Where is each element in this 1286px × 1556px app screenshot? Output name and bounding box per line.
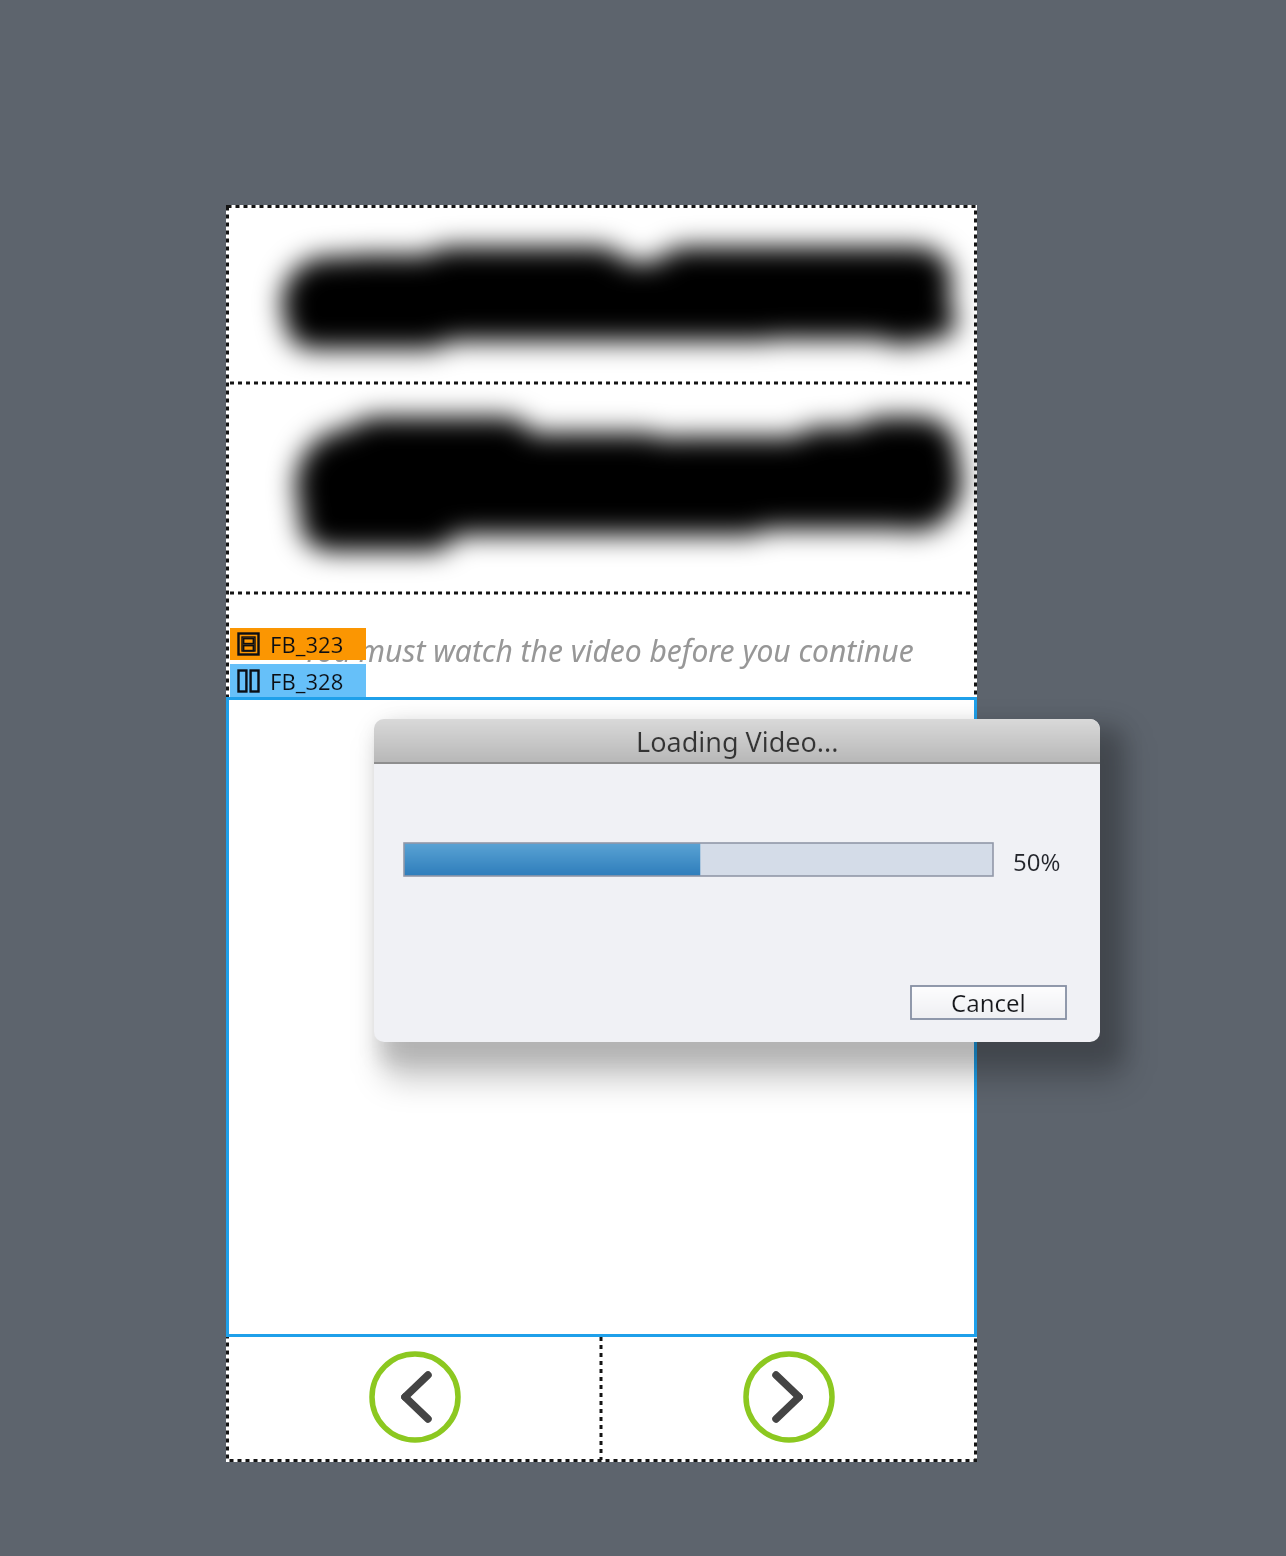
button[interactable]: Previous xyxy=(226,1337,601,1462)
button[interactable]: Headline text xyxy=(226,205,977,395)
button[interactable]: FB_328 xyxy=(230,664,366,697)
button[interactable]: Body text xyxy=(226,385,977,585)
staticText: FB_323 xyxy=(270,629,344,659)
staticText: FB_328 xyxy=(270,666,344,696)
button[interactable]: Next xyxy=(601,1337,977,1462)
button[interactable]: Video player region xyxy=(226,697,977,1337)
button[interactable]: FB_323 xyxy=(230,628,366,660)
staticText: Loading Video... xyxy=(636,723,839,760)
staticText: You must watch the video before you cont… xyxy=(303,630,914,671)
staticText: 50% xyxy=(1013,845,1061,878)
button[interactable]: Cancel xyxy=(911,986,1066,1019)
staticText: Cancel xyxy=(951,986,1026,1019)
